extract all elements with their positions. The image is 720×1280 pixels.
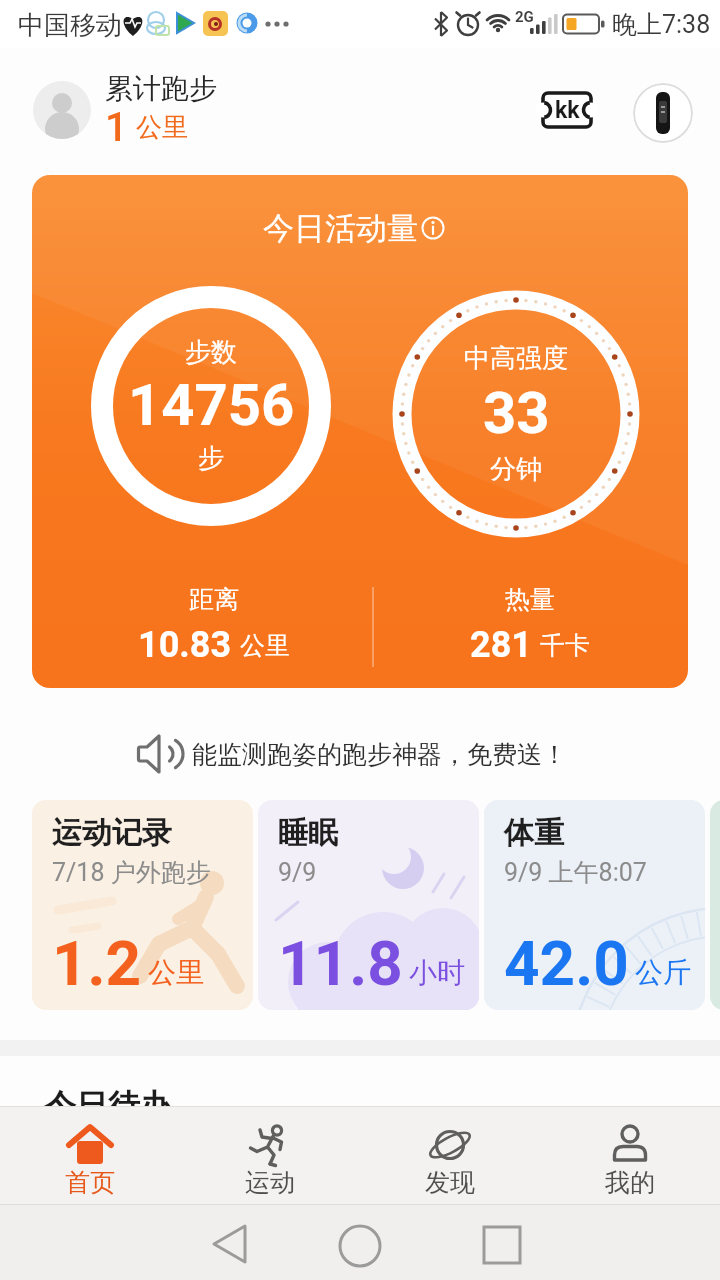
button[interactable]: 发现: [360, 1106, 540, 1204]
staticText: 热量: [505, 584, 555, 615]
staticText: 9/9 上午8:07: [504, 857, 647, 888]
staticText: 能监测跑姿的跑步神器，免费送！: [192, 739, 567, 770]
button[interactable]: kk: [538, 90, 596, 134]
button[interactable]: 我的: [540, 1106, 720, 1204]
staticText: 运动: [245, 1167, 295, 1198]
staticText: 公里: [240, 630, 290, 661]
staticText: 体重: [504, 814, 564, 852]
staticText: 42.0: [504, 927, 629, 1000]
staticText: 10.83: [138, 624, 232, 666]
staticText: 小时: [409, 955, 465, 990]
button[interactable]: 运动: [180, 1106, 360, 1204]
staticText: 11.8: [278, 927, 403, 1000]
staticText: 发现: [425, 1167, 475, 1198]
button[interactable]: [633, 83, 693, 143]
staticText: 1.2: [52, 927, 142, 1000]
staticText: 我的: [605, 1167, 655, 1198]
staticText: 33: [483, 379, 550, 447]
staticText: 千卡: [540, 630, 590, 661]
button[interactable]: 运动记录: [32, 800, 253, 1010]
staticText: 分钟: [490, 453, 542, 486]
staticText: 距离: [189, 584, 239, 615]
staticText: 首页: [65, 1167, 115, 1198]
button[interactable]: [320, 1210, 400, 1274]
button[interactable]: 体重: [484, 800, 705, 1010]
staticText: 中国移动: [18, 9, 122, 42]
staticText: 281: [470, 624, 532, 666]
staticText: 运动记录: [52, 814, 172, 852]
staticText: 公斤: [635, 955, 691, 990]
staticText: 1: [105, 104, 128, 151]
staticText: 今日待办: [44, 1086, 172, 1106]
button[interactable]: [170, 1210, 250, 1274]
button[interactable]: 睡眠: [258, 800, 479, 1010]
staticText: kk: [555, 97, 580, 124]
staticText: 睡眠: [278, 814, 338, 852]
button[interactable]: 今日活动量: [32, 175, 688, 688]
staticText: 公里: [136, 111, 188, 144]
staticText: 中高强度: [464, 342, 568, 375]
staticText: 7/18 户外跑步: [52, 857, 211, 888]
button[interactable]: [33, 81, 91, 139]
button[interactable]: [470, 1210, 550, 1274]
staticText: 晚上7:38: [612, 9, 711, 40]
staticText: 步: [198, 442, 224, 475]
button[interactable]: 首页: [0, 1106, 180, 1204]
staticText: 2G: [515, 8, 534, 26]
staticText: 步数: [185, 336, 237, 369]
staticText: 9/9: [278, 858, 317, 887]
staticText: 14756: [128, 371, 295, 439]
staticText: 公里: [148, 955, 204, 990]
staticText: 今日活动量: [263, 209, 418, 248]
staticText: 累计跑步: [105, 71, 217, 106]
button[interactable]: 能监测跑姿的跑步神器，免费送！: [120, 726, 600, 782]
